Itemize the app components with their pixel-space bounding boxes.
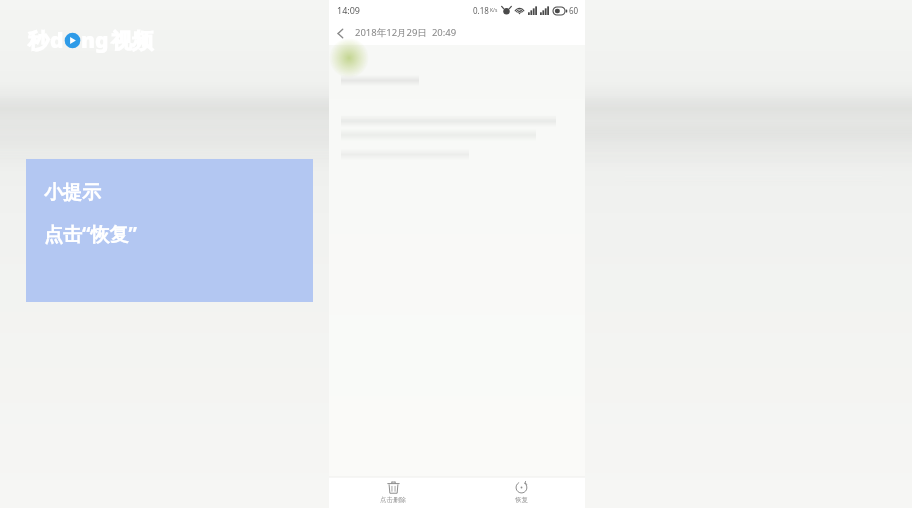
staticText: K/s	[490, 7, 498, 14]
button[interactable]: 点击删除	[368, 478, 418, 507]
staticText: 点击删除	[380, 496, 406, 504]
staticText: 2018年12月29日 20:49	[355, 26, 457, 39]
button[interactable]: Back	[329, 22, 351, 44]
button[interactable]: 恢复	[503, 478, 540, 507]
staticText: 60	[569, 5, 579, 16]
button[interactable]: 小提示	[26, 159, 313, 302]
staticText: 秒	[28, 28, 49, 54]
staticText: 恢复	[515, 496, 528, 504]
staticText: 小提示	[44, 181, 101, 205]
staticText: 视频	[111, 28, 153, 54]
staticText: 0.18	[473, 5, 489, 16]
staticText: d	[50, 26, 64, 55]
staticText: 14:09	[337, 4, 361, 16]
staticText: 点击“恢复”	[44, 221, 137, 247]
staticText: ng	[81, 26, 109, 55]
